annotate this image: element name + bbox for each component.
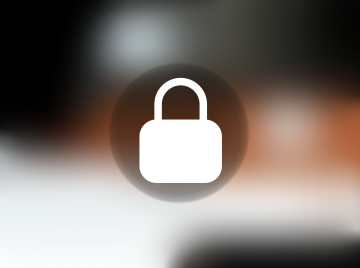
button[interactable]: Locked content — [0, 0, 360, 268]
